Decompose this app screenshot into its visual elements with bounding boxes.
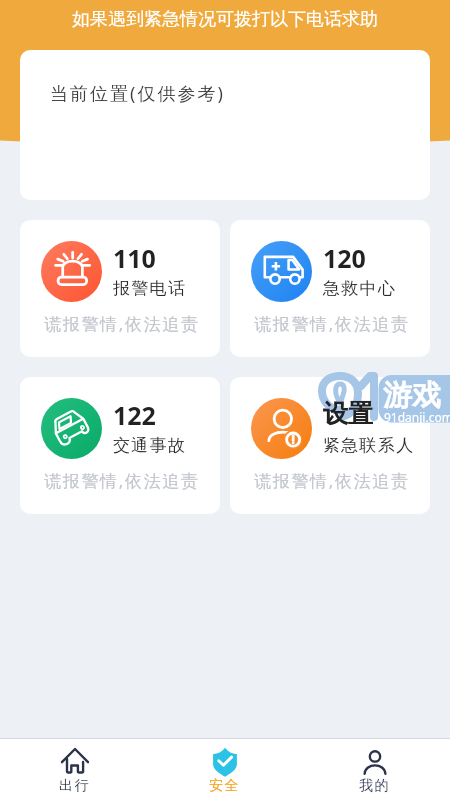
staticText: 紧急联系人 <box>323 435 415 456</box>
staticText: 当前位置(仅供参考) <box>50 81 225 106</box>
staticText: 谎报警情,依法追责 <box>44 312 200 335</box>
staticText: 谎报警情,依法追责 <box>254 312 410 335</box>
staticText: 设置 <box>323 398 373 429</box>
button[interactable]: 当前位置(仅供参考) <box>20 50 430 200</box>
staticText: 出行 <box>59 777 91 795</box>
staticText: 报警电话 <box>113 278 187 299</box>
staticText: 110 <box>113 241 156 275</box>
staticText: 急救中心 <box>323 278 397 299</box>
button[interactable]: 紧急联系人设置 <box>230 377 430 514</box>
button[interactable]: 我的 <box>300 739 450 795</box>
button[interactable]: 交通事故 122 <box>20 377 220 514</box>
button[interactable]: 急救中心 120 <box>230 220 430 357</box>
staticText: 谎报警情,依法追责 <box>44 469 200 492</box>
staticText: 120 <box>323 241 366 275</box>
staticText: 游戏 <box>383 377 441 414</box>
staticText: 设置 <box>323 398 373 429</box>
button[interactable]: 出行 <box>0 739 150 795</box>
staticText: 安全 <box>209 777 241 795</box>
staticText: 91danji.com <box>384 409 450 425</box>
button[interactable]: 报警电话 110 <box>20 220 220 357</box>
staticText: 交通事故 <box>113 435 187 456</box>
staticText: 谎报警情,依法追责 <box>254 469 410 492</box>
button[interactable]: 安全 <box>150 739 300 795</box>
staticText: 我的 <box>359 777 391 795</box>
staticText: 122 <box>113 398 156 432</box>
staticText: 如果遇到紧急情况可拨打以下电话求助 <box>72 8 378 31</box>
